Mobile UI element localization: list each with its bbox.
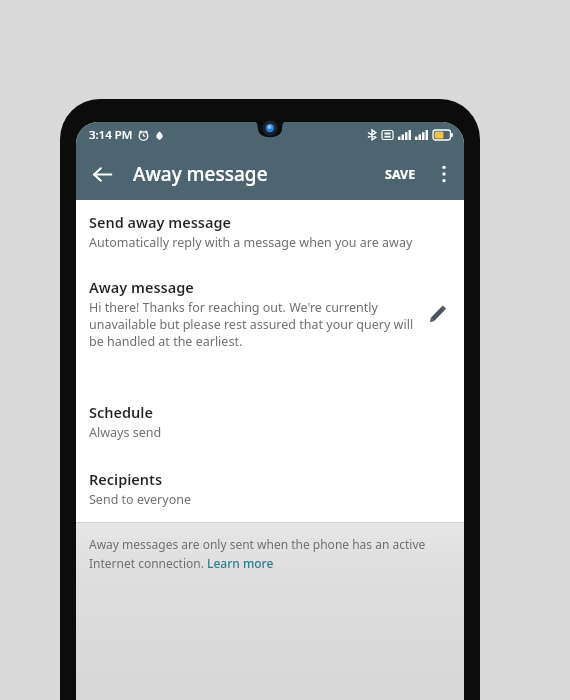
button[interactable]: Recipients [76,469,464,508]
button[interactable]: Back [82,154,122,194]
staticText: Away messages are only sent when the pho… [89,536,446,571]
staticText: Automatically reply with a message when … [89,234,413,251]
staticText: 3:14 PM [89,127,133,143]
staticText: SAVE [385,166,416,183]
staticText: Hi there! Thanks for reaching out. We're… [89,299,414,350]
button[interactable]: Away message [76,277,464,350]
button[interactable]: SAVE [377,158,424,191]
staticText: Send away message [89,212,232,232]
button[interactable]: Schedule [76,402,464,441]
button[interactable]: Edit away message [418,294,458,334]
staticText: Recipients [89,469,163,489]
button[interactable]: More options [424,154,464,194]
staticText: Send to everyone [89,491,191,508]
staticText: Away message [89,277,194,297]
button[interactable]: Send away message [76,212,464,251]
staticText: Schedule [89,402,153,422]
staticText: Away message [133,161,268,187]
staticText: Always send [89,424,162,441]
